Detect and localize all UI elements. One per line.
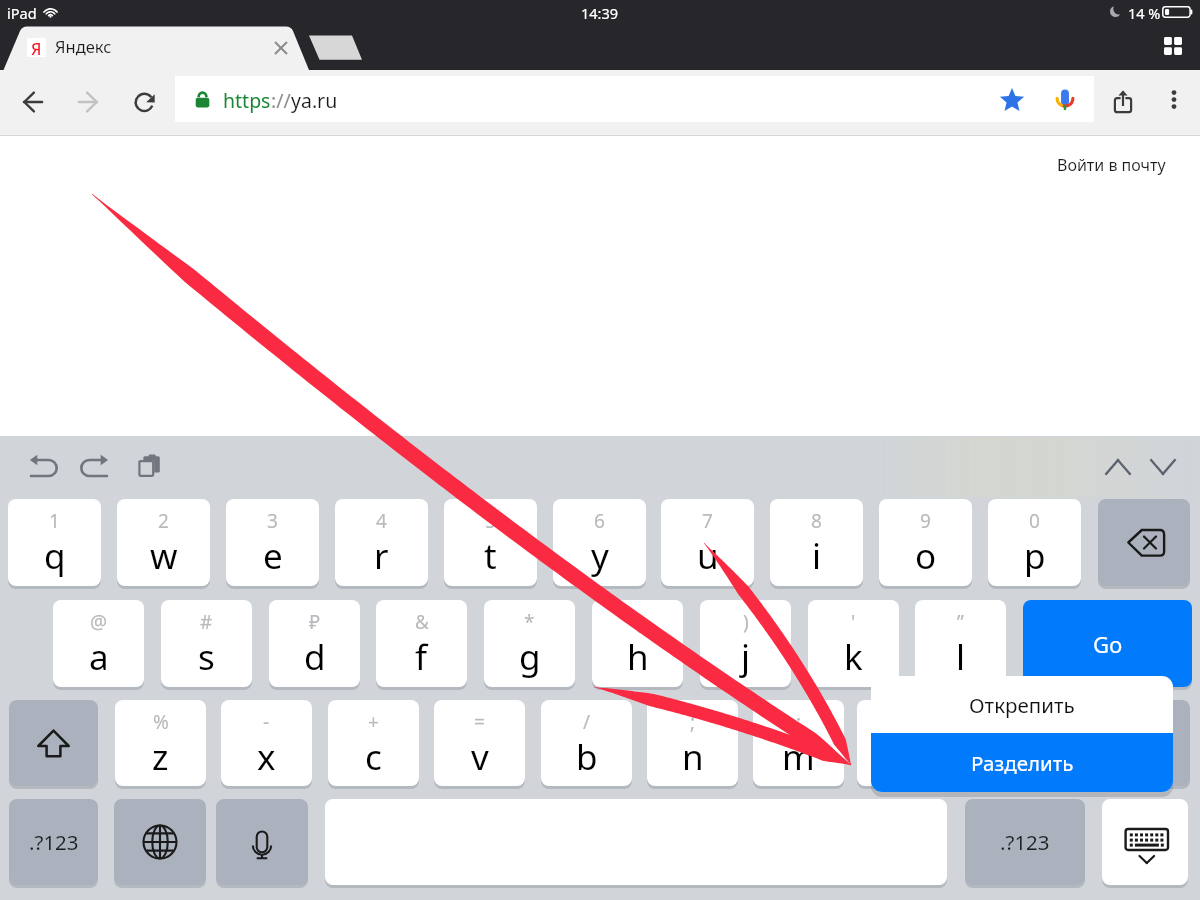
staticText: o <box>915 532 937 580</box>
staticText: 0 <box>1029 508 1040 534</box>
button[interactable]: ) <box>700 600 791 687</box>
button[interactable]: Back <box>10 79 56 125</box>
button[interactable]: Войти в почту <box>1057 154 1166 176</box>
staticText: 4 <box>376 508 387 534</box>
button[interactable]: * <box>484 600 575 687</box>
staticText: n <box>682 733 704 781</box>
staticText: e <box>263 532 283 580</box>
staticText: m <box>782 733 815 781</box>
button[interactable]: Я <box>10 26 300 70</box>
button[interactable]: @ <box>53 600 144 687</box>
button[interactable]: - <box>221 700 312 786</box>
staticText: Разделить <box>971 749 1074 777</box>
staticText: v <box>471 733 489 781</box>
button[interactable]: Voice search <box>1042 76 1088 122</box>
button[interactable] <box>175 76 1094 122</box>
staticText: x <box>257 733 276 781</box>
button[interactable]: 6 <box>553 499 646 586</box>
button[interactable]: ( <box>592 600 683 687</box>
staticText: p <box>1024 532 1046 580</box>
button[interactable]: Разделить <box>871 733 1173 792</box>
button[interactable]: Previous field <box>1095 444 1140 489</box>
button[interactable] <box>114 799 206 885</box>
staticText: ₽ <box>309 609 321 635</box>
button[interactable]: 0 <box>988 499 1081 586</box>
button[interactable]: = <box>434 700 525 786</box>
staticText: i <box>812 532 822 580</box>
button[interactable] <box>1098 499 1190 586</box>
button[interactable]: & <box>376 600 467 687</box>
button[interactable]: 8 <box>770 499 863 586</box>
button[interactable]: Forward <box>65 79 111 125</box>
staticText: = <box>474 709 485 735</box>
staticText: Go <box>1093 629 1123 659</box>
staticText: ; <box>690 709 696 735</box>
staticText: z <box>152 733 169 781</box>
staticText: b <box>576 733 598 781</box>
button[interactable]: Tabs overview <box>1153 26 1193 66</box>
button[interactable]: 5 <box>444 499 537 586</box>
button[interactable]: Go <box>1023 600 1192 687</box>
button[interactable]: Открепить <box>871 676 1173 733</box>
staticText: / <box>583 709 591 735</box>
button[interactable] <box>963 700 1054 786</box>
button[interactable]: / <box>541 700 632 786</box>
button[interactable]: 9 <box>879 499 972 586</box>
button[interactable] <box>216 799 308 885</box>
button[interactable]: .?123 <box>965 799 1085 885</box>
button[interactable]: Paste <box>134 450 166 482</box>
button[interactable]: Bookmark <box>989 76 1035 122</box>
staticText: r <box>374 532 389 580</box>
button[interactable]: ' <box>808 600 899 687</box>
staticText: Войти в почту <box>1057 154 1166 176</box>
button[interactable]: .?123 <box>9 799 98 885</box>
button[interactable]: Share <box>1100 78 1146 124</box>
staticText: https <box>223 87 271 114</box>
staticText: @ <box>90 609 108 635</box>
button[interactable]: 2 <box>117 499 210 586</box>
staticText: l <box>956 633 966 681</box>
button[interactable]: # <box>161 600 252 687</box>
staticText: 3 <box>267 508 278 534</box>
button[interactable]: : <box>753 700 844 786</box>
staticText: c <box>365 733 382 781</box>
staticText: 6 <box>594 508 605 534</box>
button[interactable]: 3 <box>226 499 319 586</box>
staticText: Яндекс <box>55 35 112 57</box>
staticText: h <box>627 633 649 681</box>
button[interactable]: 7 <box>661 499 754 586</box>
button[interactable] <box>857 700 948 786</box>
staticText: f <box>415 633 428 681</box>
button[interactable]: 4 <box>335 499 428 586</box>
staticText: - <box>263 709 270 735</box>
button[interactable] <box>1076 700 1190 786</box>
staticText: d <box>304 633 326 681</box>
button[interactable] <box>1102 799 1188 885</box>
staticText: ya.ru <box>291 87 338 114</box>
button[interactable]: ₽ <box>269 600 360 687</box>
button[interactable]: 1 <box>8 499 101 586</box>
staticText: Открепить <box>969 691 1075 719</box>
staticText: ” <box>957 609 964 635</box>
button[interactable]: Close tab <box>268 35 294 61</box>
button[interactable]: + <box>328 700 419 786</box>
staticText: 8 <box>811 508 822 534</box>
button[interactable]: Undo <box>18 446 62 490</box>
staticText: w <box>150 532 178 580</box>
button[interactable]: ” <box>915 600 1006 687</box>
staticText: j <box>741 633 751 681</box>
staticText: 14 % <box>1128 3 1161 23</box>
button[interactable]: % <box>115 700 206 786</box>
button[interactable] <box>9 700 98 786</box>
staticText: q <box>44 532 66 580</box>
button[interactable]: Next field <box>1140 444 1185 489</box>
staticText: 1 <box>49 508 60 534</box>
button[interactable]: ; <box>647 700 738 786</box>
staticText: t <box>484 532 497 580</box>
button[interactable]: Reload <box>122 79 168 125</box>
button[interactable]: Redo <box>76 446 120 490</box>
button[interactable]: More options <box>1151 76 1197 122</box>
staticText: ( <box>635 609 641 635</box>
staticText: y <box>591 532 609 580</box>
